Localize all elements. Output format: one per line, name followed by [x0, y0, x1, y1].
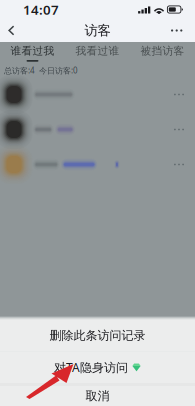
button[interactable]: 被挡访客 — [130, 42, 195, 64]
staticText: 我看过谁 — [75, 44, 119, 57]
staticText: 对TA隐身访问 — [54, 359, 128, 375]
staticText: 取消 — [85, 389, 109, 403]
staticText: 被挡访客 — [140, 44, 184, 57]
button[interactable]: 我看过谁 — [65, 42, 130, 64]
button[interactable]: 谁看过我 — [0, 42, 65, 64]
button[interactable]: More options — [171, 19, 195, 42]
staticText: 谁看过我 — [10, 44, 54, 57]
staticText: 总访客:4 今日访客:0 — [4, 65, 78, 76]
button[interactable]: 删除此条访问记录 — [0, 320, 195, 351]
button[interactable]: 取消 — [0, 386, 195, 406]
button[interactable]: 对TA隐身访问 — [0, 352, 195, 383]
staticText: 访客 — [84, 22, 110, 39]
staticText: 14:07 — [23, 1, 59, 18]
staticText: 删除此条访问记录 — [49, 328, 145, 343]
button[interactable]: Back — [0, 19, 36, 42]
